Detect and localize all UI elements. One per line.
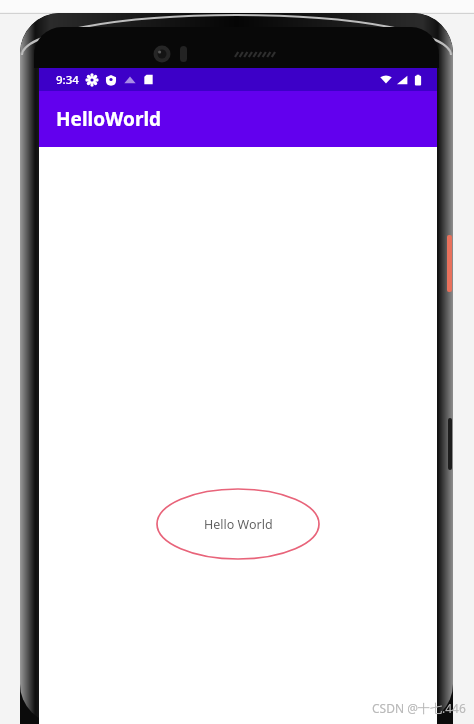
button[interactable]: Volume [448, 418, 452, 470]
button[interactable]: HelloWorld [39, 91, 437, 147]
staticText: CSDN @十七.446 [372, 700, 466, 716]
staticText: 9:34 [56, 72, 79, 88]
staticText: HelloWorld [56, 106, 162, 132]
button[interactable]: Power [447, 235, 452, 292]
staticText: Hello World [204, 516, 273, 533]
